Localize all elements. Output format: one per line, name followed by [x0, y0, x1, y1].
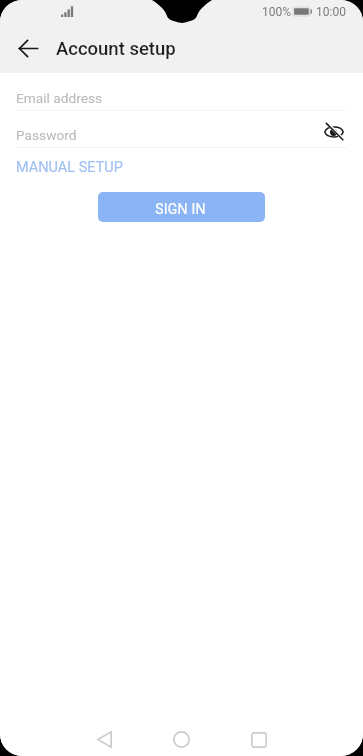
staticText: Password [16, 127, 77, 143]
staticText: Email address [16, 90, 103, 106]
button[interactable]: Recent apps [242, 719, 276, 756]
staticText: MANUAL SETUP [16, 159, 123, 176]
button[interactable]: Email address [0, 73, 363, 111]
staticText: 10:00 [316, 5, 346, 19]
button[interactable]: Back [87, 719, 121, 756]
button[interactable]: MANUAL SETUP [16, 159, 123, 176]
button[interactable]: Show password [320, 118, 348, 146]
button[interactable]: SIGN IN [98, 192, 265, 222]
staticText: SIGN IN [155, 201, 206, 217]
staticText: 100% [262, 5, 292, 19]
button[interactable]: Navigate up [8, 28, 48, 68]
button[interactable]: Password [0, 111, 310, 148]
button[interactable]: Home [164, 719, 198, 756]
staticText: Account setup [56, 38, 176, 60]
